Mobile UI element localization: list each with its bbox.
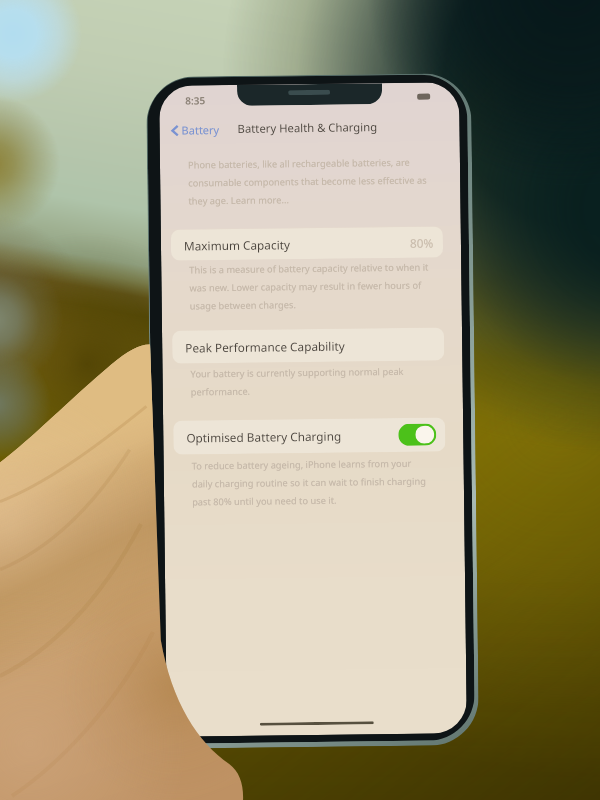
staticText: Optimised Battery Charging	[186, 428, 341, 446]
staticText: 8:35	[185, 93, 205, 107]
staticText: Battery	[181, 122, 220, 138]
button[interactable]: Optimised Battery Charging	[173, 417, 445, 455]
button[interactable]: Optimised Battery Charging toggle	[398, 423, 436, 446]
staticText: This is a measure of battery capacity re…	[189, 260, 432, 312]
staticText: To reduce battery ageing, iPhone learns …	[192, 456, 434, 508]
button[interactable]: Maximum Capacity	[171, 226, 443, 261]
staticText: Battery Health & Charging	[237, 119, 378, 136]
button[interactable]: Peak Performance Capability	[172, 327, 444, 364]
staticText: Peak Performance Capability	[185, 338, 345, 356]
staticText: Your battery is currently supporting nor…	[190, 364, 433, 398]
staticText: 80%	[410, 234, 434, 251]
staticText: Maximum Capacity	[184, 236, 290, 254]
staticText: Phone batteries, like all rechargeable b…	[188, 155, 430, 207]
button[interactable]: Battery	[168, 119, 223, 141]
